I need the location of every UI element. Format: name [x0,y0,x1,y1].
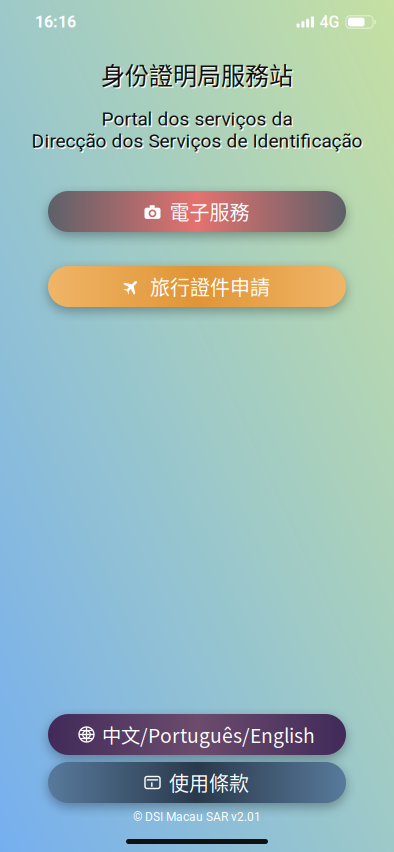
button[interactable]: 旅行證件申請 [48,266,346,307]
staticText: 電子服務 [169,197,249,226]
button[interactable]: 電子服務 [48,191,346,232]
staticText: © DSI Macau SAR v2.01 [133,810,261,824]
staticText: Portal dos serviços da [101,108,292,130]
staticText: 使用條款 [169,768,249,797]
staticText: 身份證明局服務站 [101,57,293,91]
staticText: 身份證明局服務站 [102,58,294,93]
staticText: Direcção dos Serviços de Identificação [31,130,362,152]
button[interactable]: 中文/Português/English [48,714,346,755]
button[interactable]: 使用條款 [48,762,346,803]
staticText: 中文/Português/English [102,720,315,748]
staticText: Portal dos serviços da [103,109,294,131]
staticText: Direcção dos Serviços de Identificação [33,131,364,153]
staticText: 旅行證件申請 [150,272,270,301]
staticText: 16:16 [35,13,76,31]
staticText: 4G [319,13,339,31]
